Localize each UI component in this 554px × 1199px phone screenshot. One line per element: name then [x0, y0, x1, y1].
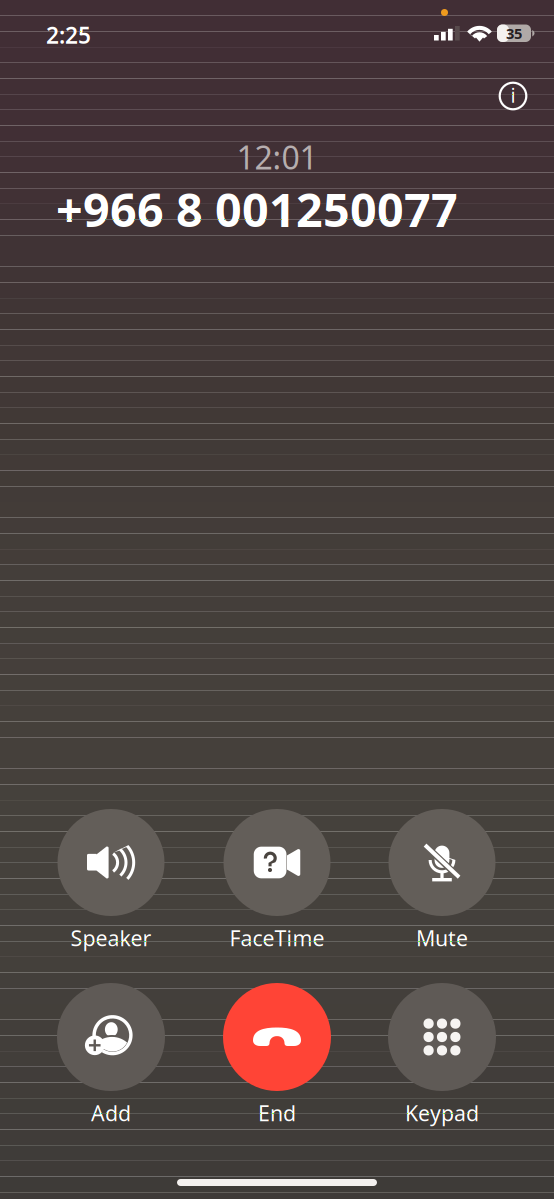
staticText: 35	[506, 23, 522, 43]
button[interactable]: Mute	[366, 809, 518, 953]
button[interactable]: Speaker	[35, 809, 187, 953]
staticText: 12:01	[236, 136, 317, 178]
staticText: Add	[91, 1099, 131, 1127]
button[interactable]: Add	[35, 983, 187, 1128]
button[interactable]: Keypad	[366, 983, 518, 1128]
button[interactable]: FaceTime	[201, 809, 353, 953]
staticText: 2:25	[46, 20, 91, 50]
button[interactable]: Call info	[491, 74, 535, 118]
staticText: FaceTime	[229, 924, 324, 952]
staticText: End	[258, 1099, 296, 1127]
staticText: Keypad	[405, 1099, 479, 1127]
staticText: Mute	[416, 924, 468, 952]
staticText: Speaker	[70, 924, 151, 952]
button[interactable]: End	[201, 983, 353, 1128]
staticText: +966 8 001250077	[56, 178, 458, 240]
staticText: i	[510, 82, 515, 108]
